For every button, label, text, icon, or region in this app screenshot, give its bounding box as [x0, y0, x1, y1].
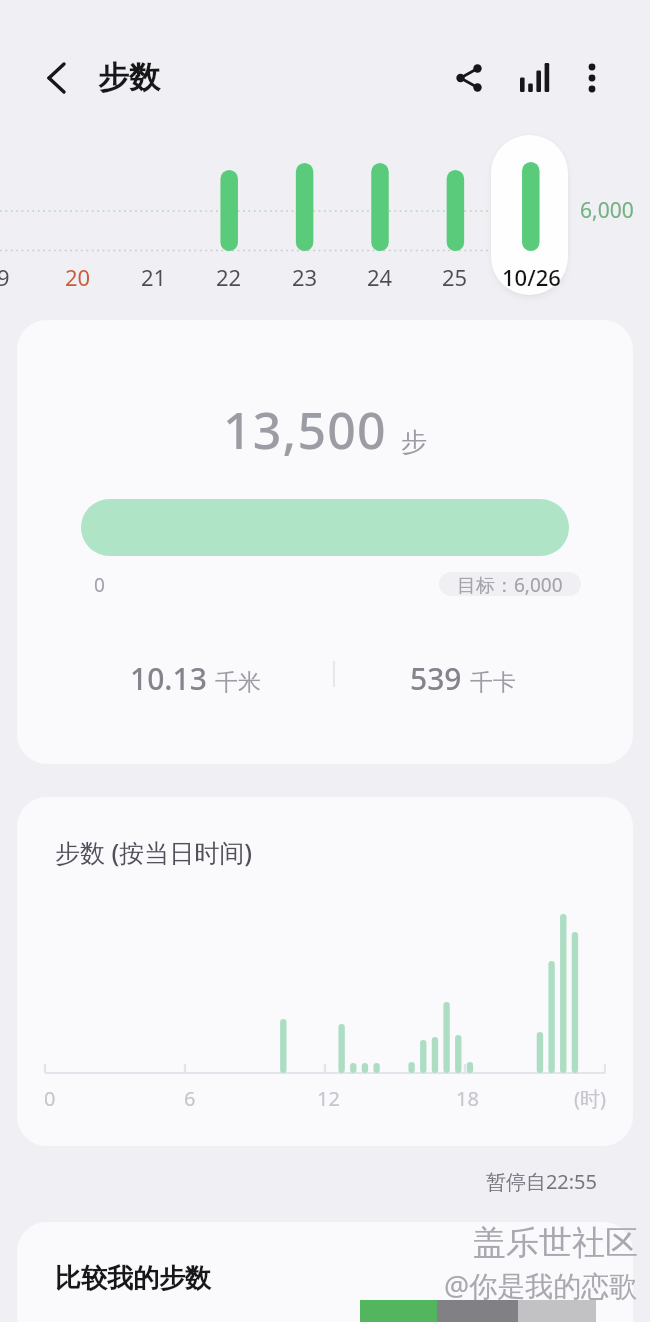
staticText: 步数 [98, 58, 160, 97]
staticText: @你是我的恋歌 [444, 1266, 638, 1304]
staticText: 6,000 [580, 196, 634, 225]
button[interactable]: More options [563, 49, 620, 106]
staticText: 10/26 [502, 262, 561, 292]
staticText: 步数 (按当日时间) [55, 835, 253, 869]
staticText: 22 [216, 262, 242, 292]
button[interactable]: Share [440, 49, 497, 106]
staticText: 千米 [215, 668, 261, 697]
button[interactable]: Trends chart [506, 49, 563, 106]
staticText: 6 [184, 1085, 196, 1112]
button[interactable]: 步数 (按当日时间) [17, 797, 633, 1146]
staticText: 25 [442, 262, 468, 292]
staticText: 0 [44, 1085, 56, 1112]
staticText: 20 [65, 262, 91, 292]
staticText: 9 [0, 262, 10, 292]
staticText: 12 [317, 1085, 340, 1112]
button[interactable]: 比较我的步数 [17, 1222, 633, 1322]
staticText: 24 [367, 262, 393, 292]
button[interactable]: Today 10/26 [491, 135, 568, 295]
staticText: 13,500 [223, 396, 387, 464]
staticText: 0 [94, 572, 105, 598]
staticText: 目标：6,000 [457, 572, 563, 596]
staticText: 比较我的步数 [55, 1262, 211, 1295]
staticText: 23 [292, 262, 318, 292]
staticText: (时) [574, 1085, 606, 1112]
staticText: 暂停自22:55 [0, 1168, 597, 1195]
staticText: 盖乐世社区 [473, 1222, 638, 1264]
staticText: 千卡 [470, 668, 516, 697]
button[interactable]: 539 [313, 658, 613, 699]
button[interactable]: 10.13 [37, 658, 353, 699]
staticText: 21 [141, 262, 167, 292]
staticText: 539 [410, 658, 462, 699]
staticText: 步 [401, 426, 427, 459]
button[interactable]: Back [30, 52, 86, 104]
staticText: 18 [456, 1085, 479, 1112]
button[interactable]: 13,500 [17, 320, 633, 764]
staticText: 10.13 [130, 658, 207, 699]
